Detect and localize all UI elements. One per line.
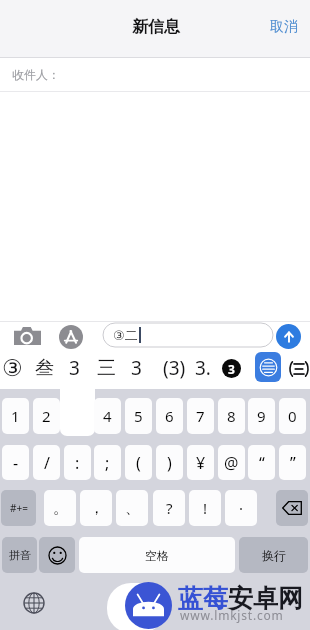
staticText: 8 <box>227 406 236 426</box>
staticText: @ <box>224 452 239 474</box>
button[interactable]: ( <box>125 445 152 480</box>
staticText: 安卓网 <box>228 583 303 614</box>
staticText: (3) <box>163 355 186 381</box>
staticText: 空格 <box>145 548 169 563</box>
button[interactable]: 7 <box>187 398 214 434</box>
button[interactable]: ¥ <box>187 445 214 480</box>
button[interactable]: 6 <box>156 398 183 434</box>
staticText: 新信息 <box>132 17 180 37</box>
button[interactable]: ? <box>153 490 185 526</box>
staticText: ( <box>136 452 141 474</box>
staticText: : <box>75 452 80 474</box>
staticText: 3 <box>69 355 80 381</box>
staticText: 4 <box>103 406 112 426</box>
staticText: 蓝莓 <box>178 583 228 614</box>
staticText: 三 <box>97 356 116 380</box>
staticText: 1 <box>11 406 20 426</box>
button[interactable]: 4 <box>94 398 121 434</box>
button[interactable]: : <box>64 445 91 480</box>
button[interactable]: 2 <box>33 398 60 434</box>
button[interactable]: 1 <box>2 398 29 434</box>
button[interactable]: 0 <box>279 398 306 434</box>
staticText: 。 <box>53 499 68 518</box>
button[interactable]: (3) <box>157 352 191 384</box>
staticText: · <box>239 498 244 518</box>
button[interactable]: App Store <box>58 324 83 349</box>
button[interactable]: 3. <box>186 352 220 384</box>
staticText: 取消 <box>270 18 298 36</box>
button[interactable]: ! <box>189 490 221 526</box>
button[interactable]: ③ <box>0 352 29 384</box>
staticText: ③ <box>2 355 23 382</box>
button[interactable]: ; <box>94 445 121 480</box>
staticText: 3 <box>131 355 142 381</box>
staticText: ¥ <box>196 452 206 474</box>
staticText: 5 <box>134 406 143 426</box>
staticText: 0 <box>288 406 297 426</box>
staticText: ， <box>89 499 104 518</box>
staticText: - <box>13 452 19 474</box>
button[interactable]: ③二 <box>103 323 273 347</box>
staticText: 拼音 <box>9 548 31 562</box>
button[interactable]: Delete <box>276 490 308 526</box>
staticText: 收件人： <box>12 67 60 82</box>
button[interactable]: · <box>225 490 257 526</box>
staticText: / <box>44 452 50 474</box>
staticText: 6 <box>165 406 174 426</box>
button[interactable]: Send <box>276 324 301 349</box>
button[interactable]: - <box>2 445 29 480</box>
button[interactable]: 取消 <box>262 10 306 44</box>
staticText: 7 <box>196 406 205 426</box>
staticText: #+= <box>10 501 28 515</box>
button[interactable]: 换行 <box>239 537 308 573</box>
button[interactable]: More candidates <box>288 354 310 384</box>
button[interactable]: ， <box>80 490 112 526</box>
staticText: ! <box>203 498 208 518</box>
button[interactable]: 。 <box>44 490 76 526</box>
button[interactable]: / <box>33 445 60 480</box>
button[interactable]: 、 <box>116 490 148 526</box>
staticText: “ <box>259 452 265 474</box>
button[interactable]: Selected candidate <box>255 352 281 382</box>
button[interactable]: 3 <box>57 352 91 384</box>
staticText: 叁 <box>35 356 54 380</box>
staticText: 9 <box>257 406 266 426</box>
button[interactable]: 收件人： <box>0 58 310 91</box>
button[interactable]: “ <box>248 445 275 480</box>
button[interactable]: Emoji <box>39 537 75 573</box>
staticText: 2 <box>42 406 51 426</box>
button[interactable]: 3 <box>119 352 153 384</box>
staticText: ? <box>166 498 173 518</box>
staticText: ) <box>167 452 172 474</box>
button[interactable]: Camera <box>13 326 41 346</box>
staticText: 、 <box>125 499 140 518</box>
button[interactable]: #+= <box>1 490 36 526</box>
staticText: ” <box>290 452 296 474</box>
staticText: 换行 <box>262 548 286 563</box>
button[interactable]: 三 <box>89 352 123 384</box>
button[interactable]: 空格 <box>79 537 235 573</box>
staticText: www.lmkjst.com <box>180 607 284 623</box>
staticText: 3 <box>228 361 235 377</box>
button[interactable]: ) <box>156 445 183 480</box>
button[interactable]: 8 <box>218 398 245 434</box>
button[interactable]: @ <box>218 445 245 480</box>
button[interactable]: 9 <box>248 398 275 434</box>
button[interactable]: 拼音 <box>2 537 37 573</box>
staticText: ③二 <box>113 327 138 343</box>
button[interactable]: 3 <box>222 359 241 378</box>
button[interactable]: ” <box>279 445 306 480</box>
staticText: ; <box>105 452 110 474</box>
button[interactable]: 5 <box>125 398 152 434</box>
staticText: 3. <box>195 355 211 381</box>
button[interactable]: Switch keyboard language <box>22 591 45 614</box>
button[interactable]: 叁 <box>27 352 61 384</box>
